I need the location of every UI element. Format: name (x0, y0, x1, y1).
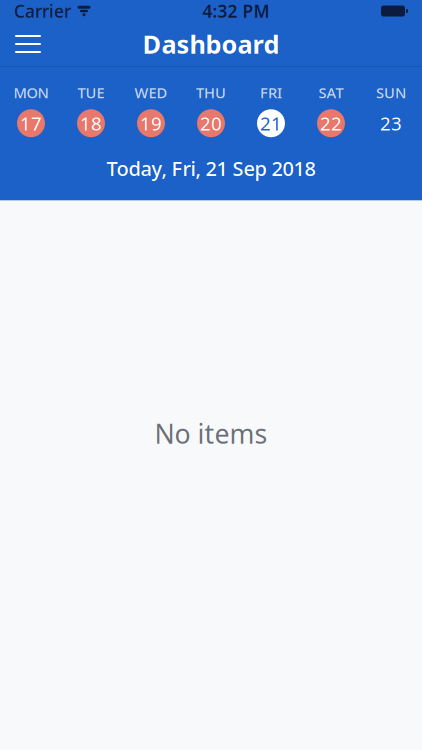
staticText: 19 (140, 111, 162, 136)
button[interactable]: FRI (241, 83, 301, 137)
staticText: 17 (20, 111, 42, 136)
button[interactable]: THU (181, 83, 241, 137)
staticText: 20 (200, 111, 222, 136)
staticText: 22 (320, 111, 342, 136)
staticText: Dashboard (142, 27, 279, 61)
staticText: MON (13, 83, 48, 102)
staticText: TUE (77, 83, 104, 102)
staticText: 23 (380, 111, 402, 136)
button[interactable]: SUN (361, 83, 421, 137)
staticText: THU (196, 83, 226, 102)
button[interactable]: Menu (6, 22, 50, 66)
staticText: 4:32 PM (202, 0, 269, 22)
staticText: SAT (318, 83, 343, 102)
staticText: SUN (376, 83, 406, 102)
staticText: Today, Fri, 21 Sep 2018 (106, 155, 315, 182)
staticText: FRI (260, 83, 282, 102)
staticText: 21 (260, 111, 282, 136)
button[interactable]: WED (121, 83, 181, 137)
staticText: 18 (80, 111, 102, 136)
button[interactable]: MON (1, 83, 61, 137)
button[interactable]: TUE (61, 83, 121, 137)
staticText: WED (134, 83, 167, 102)
button[interactable]: SAT (301, 83, 361, 137)
staticText: Carrier (14, 0, 71, 22)
staticText: No items (154, 416, 267, 451)
